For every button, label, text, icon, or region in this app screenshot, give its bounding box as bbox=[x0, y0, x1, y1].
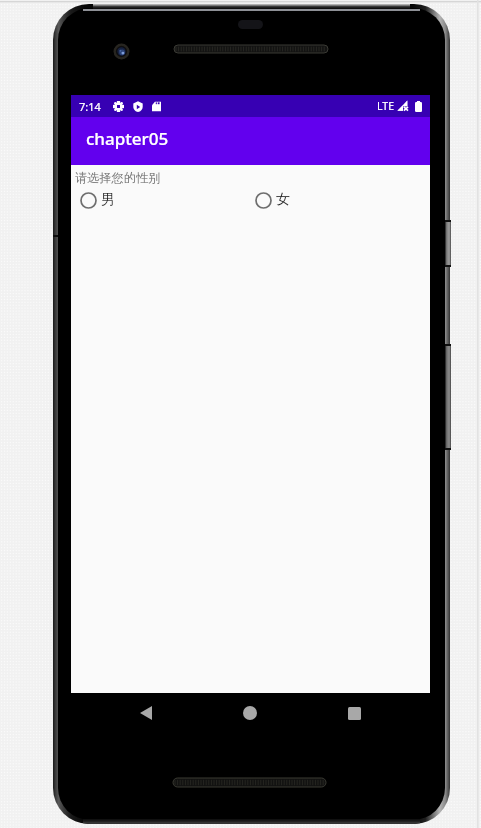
button[interactable]: 男 bbox=[71, 188, 246, 212]
staticText: chapter05 bbox=[86, 127, 169, 150]
button[interactable]: Back bbox=[126, 693, 166, 733]
button[interactable]: 女 bbox=[246, 188, 430, 212]
button[interactable]: Recent apps bbox=[334, 693, 374, 733]
staticText: 男 bbox=[101, 191, 115, 209]
staticText: LTE bbox=[377, 99, 394, 113]
button[interactable]: chapter05 bbox=[71, 117, 430, 165]
staticText: 请选择您的性别 bbox=[75, 170, 161, 185]
staticText: 7:14 bbox=[79, 99, 101, 114]
button[interactable]: Home bbox=[230, 693, 270, 733]
staticText: 女 bbox=[276, 191, 290, 209]
